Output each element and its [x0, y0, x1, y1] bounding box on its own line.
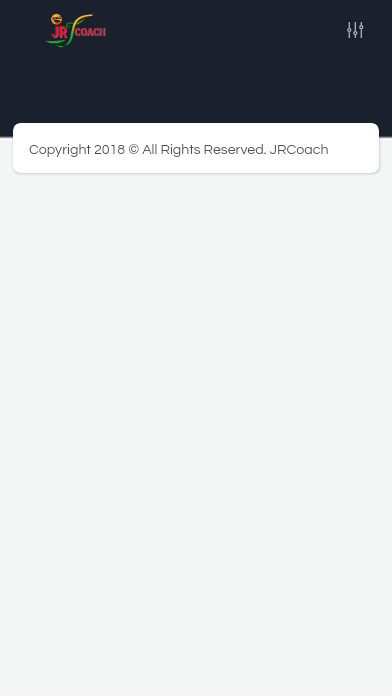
staticText: COACH	[74, 26, 106, 38]
staticText: JR	[52, 24, 68, 42]
button[interactable]: Filter settings	[339, 13, 371, 47]
staticText: COACH	[75, 26, 107, 38]
button[interactable]: Copyright 2018 © All Rights Reserved. JR…	[13, 123, 379, 173]
staticText: Copyright 2018 © All Rights Reserved. JR…	[29, 142, 329, 157]
staticText: JR	[51, 23, 67, 41]
button[interactable]: JRCoach logo	[44, 10, 114, 54]
